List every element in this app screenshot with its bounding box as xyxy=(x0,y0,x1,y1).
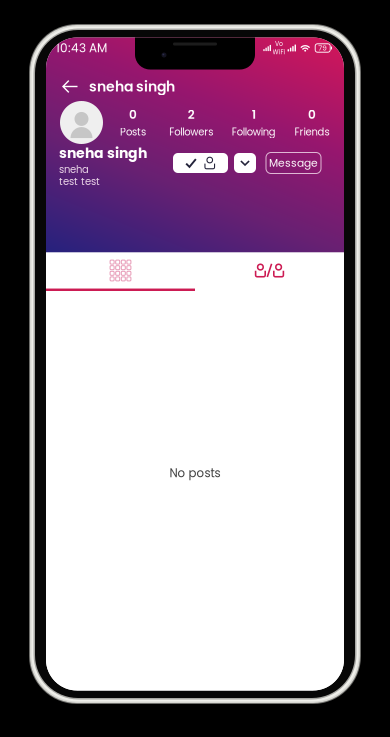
staticText: 79 xyxy=(318,43,327,53)
staticText: Friends xyxy=(294,125,329,139)
staticText: sneha xyxy=(59,162,89,176)
button[interactable]: More options xyxy=(234,153,256,173)
staticText: test test xyxy=(59,174,100,188)
staticText: WiFi xyxy=(273,48,286,56)
button[interactable]: Tagged xyxy=(195,252,344,288)
staticText: 0 xyxy=(129,106,137,123)
staticText: 10:43 AM xyxy=(56,40,107,56)
staticText: 0 xyxy=(308,106,316,123)
staticText: No posts xyxy=(169,465,220,481)
button[interactable]: Back xyxy=(59,76,81,96)
staticText: Followers xyxy=(169,125,213,139)
staticText: sneha singh xyxy=(89,77,175,96)
staticText: Following xyxy=(232,125,276,139)
staticText: 1 xyxy=(252,106,256,123)
button[interactable]: Following xyxy=(173,153,228,173)
button[interactable]: Message xyxy=(266,152,321,173)
staticText: Message xyxy=(269,155,318,170)
staticText: Vo xyxy=(275,40,283,48)
staticText: 2 xyxy=(188,106,195,123)
staticText: Posts xyxy=(120,125,146,139)
button[interactable]: Posts xyxy=(46,252,195,288)
staticText: sneha singh xyxy=(59,143,147,163)
